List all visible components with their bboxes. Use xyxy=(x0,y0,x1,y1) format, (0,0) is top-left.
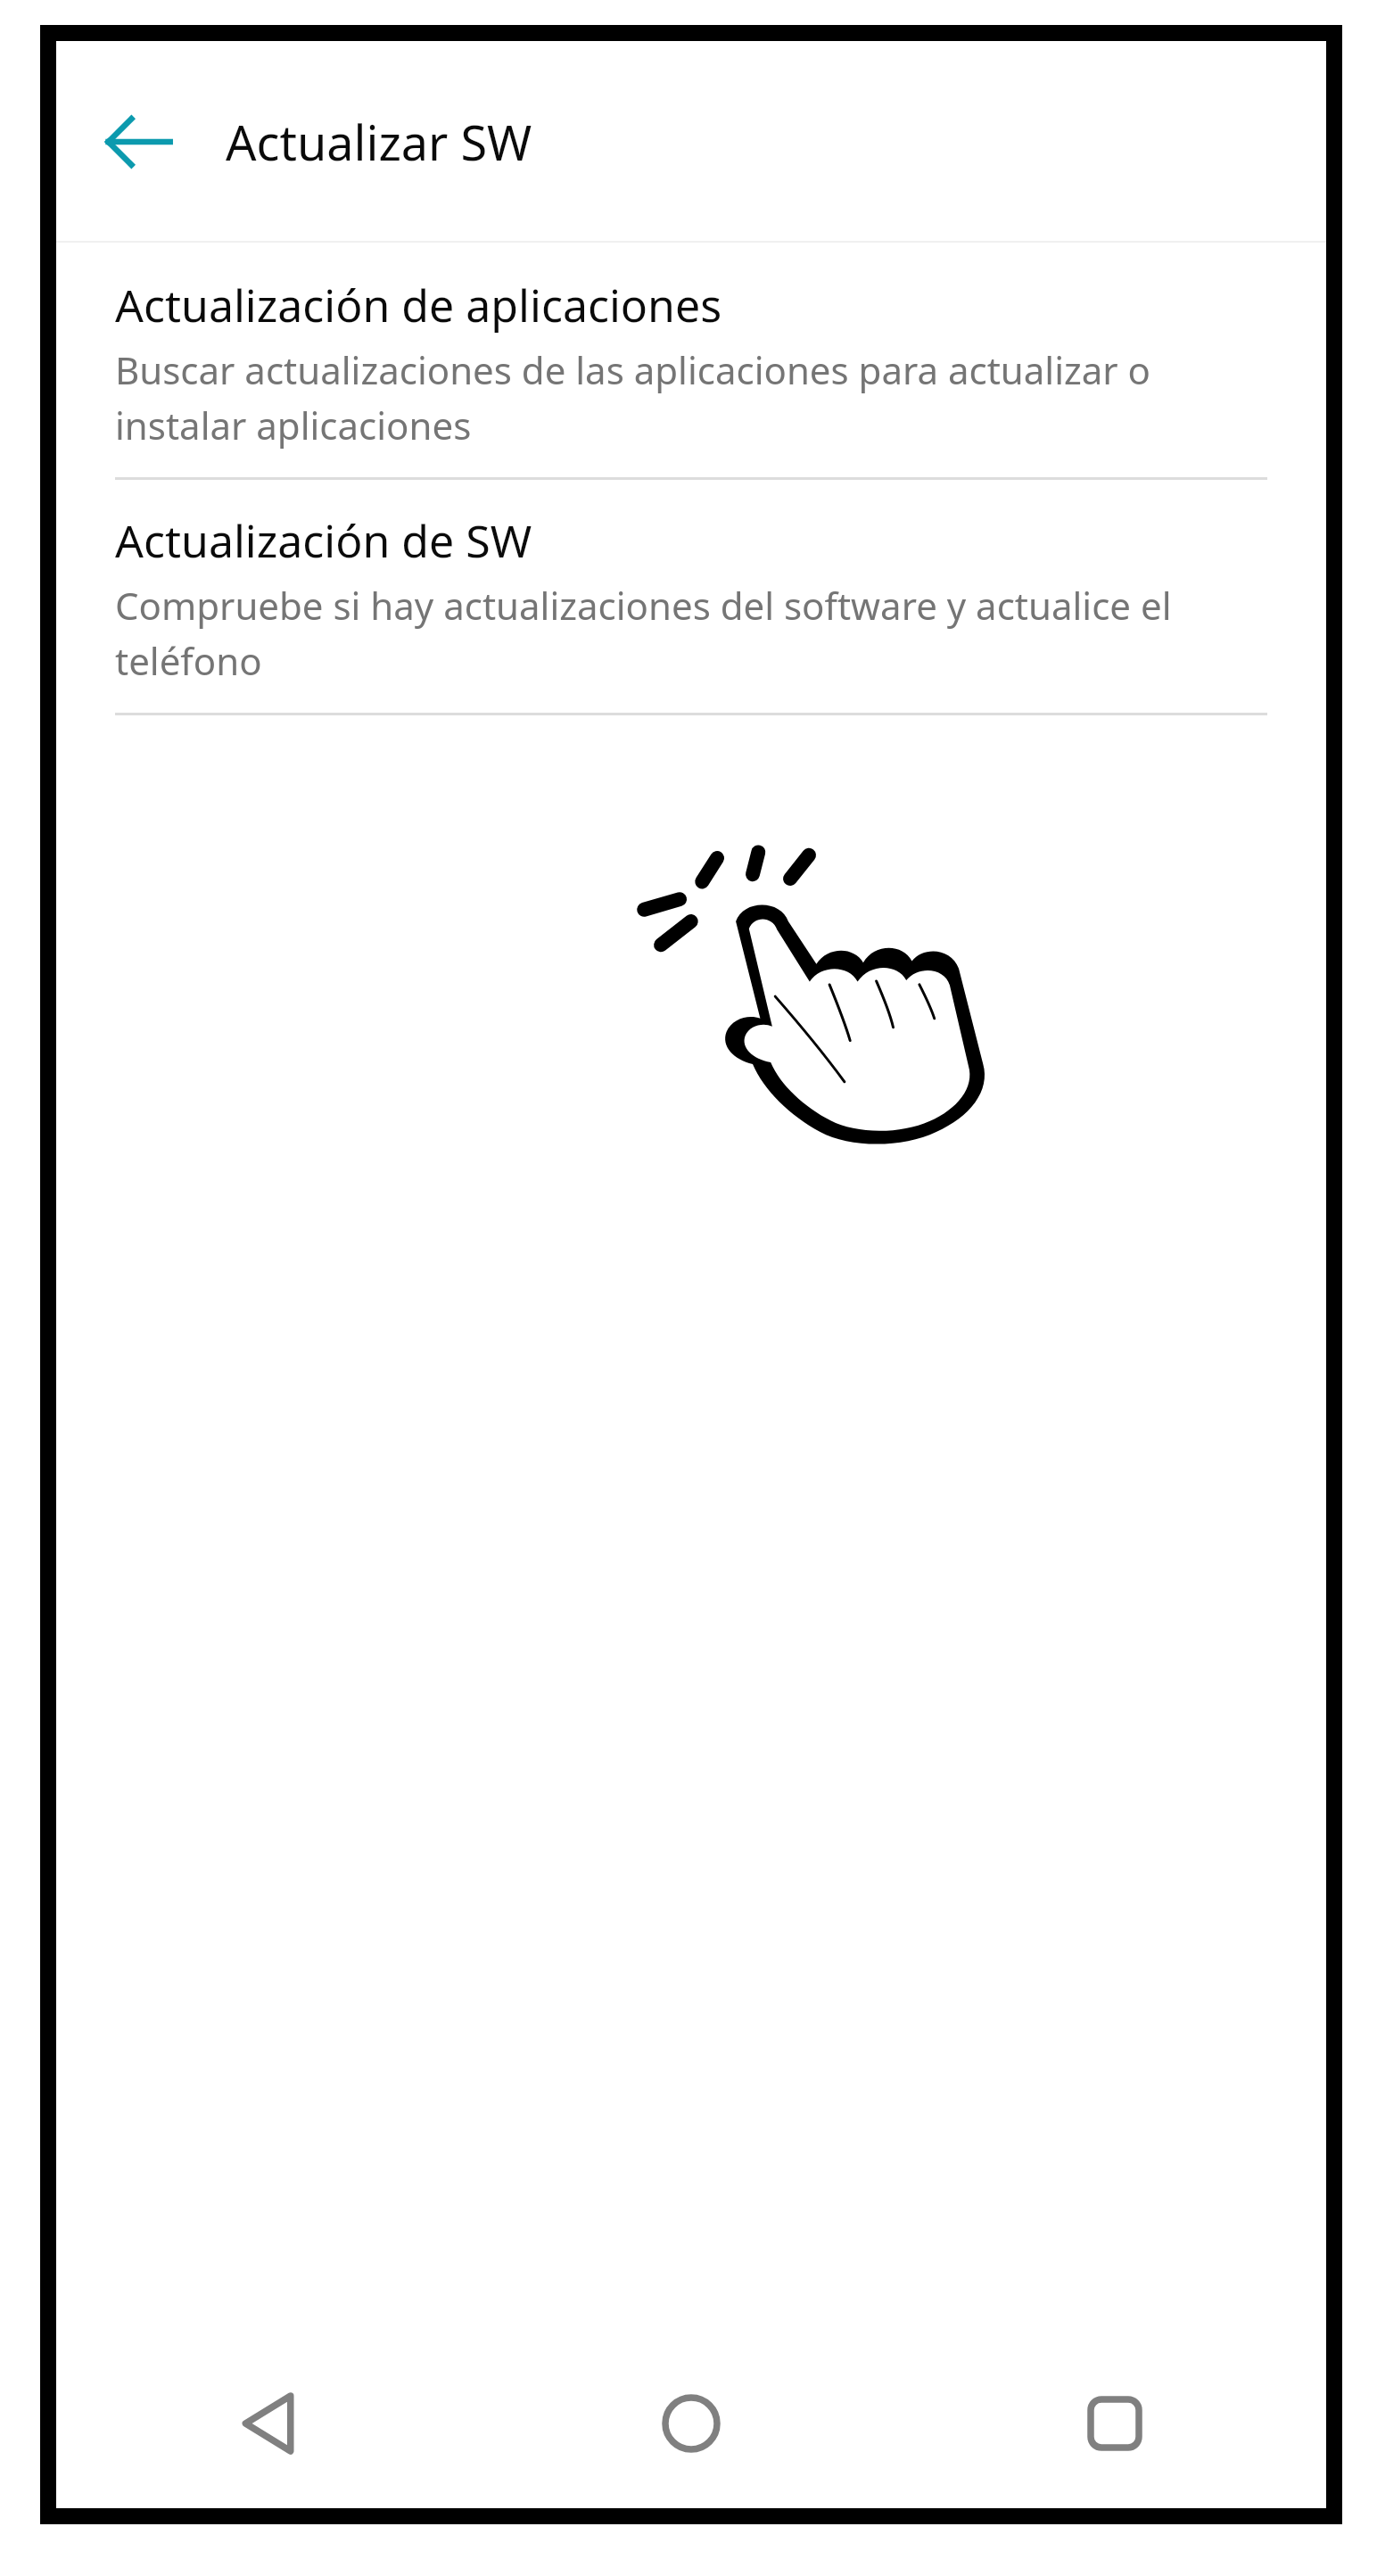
staticText: Actualización de aplicaciones xyxy=(115,275,722,335)
staticText: Buscar actualizaciones de las aplicacion… xyxy=(115,344,1267,450)
button[interactable]: Inicio xyxy=(479,2339,903,2508)
button[interactable]: Actualización de SW xyxy=(56,480,1326,713)
staticText: Actualizar SW xyxy=(226,109,532,175)
button[interactable]: Atrás xyxy=(56,2339,479,2508)
staticText: Compruebe si hay actualizaciones del sof… xyxy=(115,580,1267,686)
button[interactable]: Actualización de aplicaciones xyxy=(56,243,1326,477)
staticText: Actualización de SW xyxy=(115,510,532,571)
button[interactable]: Recientes xyxy=(903,2339,1326,2508)
button[interactable]: Atrás xyxy=(92,95,185,188)
